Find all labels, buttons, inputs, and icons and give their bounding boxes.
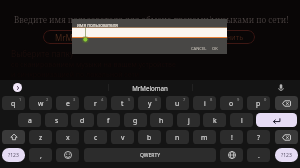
- staticText: f: [107, 116, 110, 125]
- button[interactable]: e: [56, 96, 79, 110]
- staticText: Выберите папку: [11, 48, 74, 59]
- staticText: p: [256, 99, 261, 108]
- button[interactable]: ?123: [275, 148, 298, 162]
- staticText: ?123: [8, 152, 19, 159]
- staticText: z: [39, 133, 43, 142]
- other: Voice input: [277, 83, 285, 91]
- button[interactable]: x: [56, 130, 79, 144]
- staticText: 8: [210, 97, 213, 102]
- staticText: 1: [19, 97, 22, 102]
- button[interactable]: ,: [29, 148, 52, 162]
- button[interactable]: .: [247, 148, 270, 162]
- staticText: ?: [257, 133, 260, 142]
- staticText: !: [231, 133, 233, 142]
- button[interactable]: c: [84, 130, 107, 144]
- button[interactable]: w: [29, 96, 52, 110]
- staticText: r: [94, 99, 97, 108]
- staticText: MrMeloman: [55, 32, 102, 43]
- staticText: u: [175, 99, 180, 108]
- staticText: b: [147, 133, 152, 142]
- staticText: 9: [237, 97, 240, 102]
- button[interactable]: !: [220, 130, 243, 144]
- staticText: n: [175, 133, 180, 142]
- button[interactable]: s: [45, 113, 68, 127]
- button[interactable]: Expand suggestions: [13, 83, 22, 92]
- staticText: y: [148, 99, 152, 108]
- button[interactable]: QWERTY: [84, 148, 216, 162]
- staticText: OK: [212, 46, 218, 52]
- button[interactable]: Enter: [256, 113, 297, 127]
- button[interactable]: k: [203, 113, 226, 127]
- button[interactable]: g: [124, 113, 147, 127]
- button[interactable]: z: [29, 130, 52, 144]
- staticText: w: [38, 99, 44, 108]
- staticText: MrMeloman: [0, 84, 300, 92]
- staticText: имя пользователя: [77, 22, 118, 28]
- button[interactable]: v: [111, 130, 134, 144]
- button[interactable]: t: [111, 96, 134, 110]
- staticText: сохранить: [206, 32, 244, 42]
- staticText: 6: [155, 97, 158, 102]
- button[interactable]: q: [2, 96, 25, 110]
- button[interactable]: p: [247, 96, 270, 110]
- button[interactable]: ?: [247, 130, 270, 144]
- button[interactable]: i: [193, 96, 216, 110]
- button[interactable]: n: [166, 130, 189, 144]
- staticText: CANCEL: [191, 46, 207, 52]
- staticText: 0: [264, 97, 267, 102]
- button[interactable]: d: [71, 113, 94, 127]
- button[interactable]: r: [84, 96, 107, 110]
- staticText: 5: [128, 97, 131, 102]
- staticText: 2: [46, 97, 49, 102]
- button[interactable]: [72, 28, 227, 37]
- button[interactable]: Emoji: [56, 148, 79, 162]
- staticText: d: [80, 116, 85, 125]
- staticText: e: [66, 99, 70, 108]
- button[interactable]: Backspace: [275, 96, 298, 110]
- staticText: ,: [40, 151, 42, 160]
- staticText: 4: [101, 97, 104, 102]
- button[interactable]: m: [193, 130, 216, 144]
- staticText: Введите имя пользователя для обмена трек…: [14, 14, 289, 25]
- staticText: i: [204, 99, 206, 108]
- button[interactable]: Backspace: [275, 130, 298, 144]
- staticText: ?123: [281, 152, 292, 159]
- staticText: k: [213, 116, 217, 125]
- button[interactable]: h: [150, 113, 173, 127]
- button[interactable]: OK: [210, 44, 220, 54]
- staticText: 3: [73, 97, 76, 102]
- staticText: 7: [183, 97, 186, 102]
- button[interactable]: MrMeloman: [43, 30, 255, 44]
- staticText: m: [201, 133, 208, 142]
- button[interactable]: CANCEL: [189, 44, 209, 54]
- button[interactable]: a: [18, 113, 41, 127]
- button[interactable]: j: [177, 113, 200, 127]
- staticText: l: [241, 116, 243, 125]
- button[interactable]: b: [138, 130, 161, 144]
- button[interactable]: f: [97, 113, 120, 127]
- staticText: a: [28, 116, 32, 125]
- staticText: o: [229, 99, 234, 108]
- staticText: v: [121, 133, 125, 142]
- button[interactable]: Switch language: [220, 148, 243, 162]
- button[interactable]: Shift: [2, 130, 25, 144]
- staticText: QWERTY: [140, 152, 161, 159]
- staticText: j: [188, 116, 190, 125]
- staticText: t: [121, 99, 124, 108]
- staticText: h: [159, 116, 164, 125]
- button[interactable]: o: [220, 96, 243, 110]
- button[interactable]: y: [138, 96, 161, 110]
- staticText: x: [66, 133, 70, 142]
- staticText: s: [55, 116, 59, 125]
- button[interactable]: ?123: [2, 148, 25, 162]
- staticText: .: [258, 151, 260, 160]
- button[interactable]: l: [230, 113, 253, 127]
- staticText: c: [94, 133, 98, 142]
- staticText: q: [11, 99, 16, 108]
- staticText: g: [133, 116, 138, 125]
- button[interactable]: u: [166, 96, 189, 110]
